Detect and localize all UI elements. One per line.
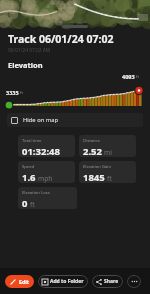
staticText: 06/01/24 07:02 AM [8, 47, 51, 54]
staticText: Elevation Gain [83, 164, 112, 170]
staticText: mph [38, 174, 53, 183]
button[interactable]: Edit [5, 275, 34, 288]
staticText: 1.6 [22, 171, 36, 183]
staticText: 0 [22, 197, 28, 209]
staticText: Total time [22, 138, 42, 144]
staticText: 2.52 [83, 145, 102, 157]
button[interactable]: Speed [18, 161, 75, 183]
button[interactable]: Hide on map [7, 113, 143, 127]
staticText: ft [20, 90, 23, 96]
staticText: Distance [83, 138, 100, 144]
staticText: mi [104, 148, 112, 157]
button[interactable]: Add to Folder [38, 275, 88, 288]
staticText: Hide on map [23, 116, 58, 124]
staticText: Elevation Loss [22, 190, 50, 196]
button[interactable]: Share [92, 275, 123, 288]
button[interactable]: Elevation Loss [18, 187, 77, 209]
button[interactable]: Elevation Gain [79, 161, 136, 183]
staticText: Elevation [8, 60, 43, 70]
staticText: Speed [22, 164, 35, 170]
staticText: 3335 [6, 89, 19, 96]
staticText: Track 06/01/24 07:02 [8, 32, 114, 46]
staticText: ft [107, 174, 112, 183]
staticText: Share [104, 278, 119, 285]
button[interactable]: Distance [79, 135, 136, 157]
button[interactable]: Total time [18, 135, 75, 157]
staticText: 1845 [83, 171, 105, 183]
staticText: ft [136, 74, 139, 80]
staticText: Edit [19, 278, 29, 285]
button[interactable]: More options [127, 275, 141, 288]
staticText: ft [30, 200, 35, 209]
staticText: 01:32:48 [22, 145, 60, 157]
staticText: Add to Folder [50, 278, 84, 285]
staticText: 4093 [122, 73, 135, 80]
